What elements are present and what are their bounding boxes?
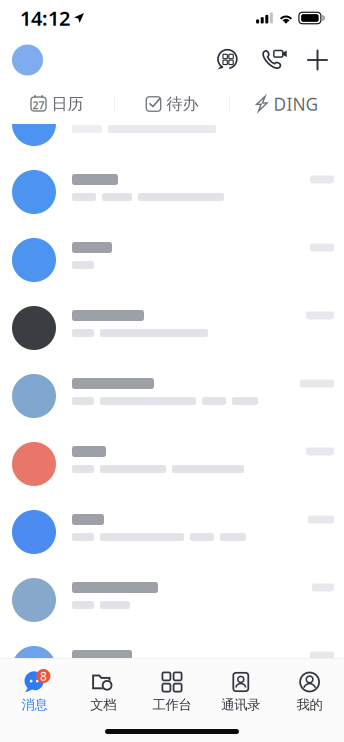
staticText: 27: [32, 98, 44, 112]
button[interactable]: [0, 226, 344, 294]
staticText: 工作台: [152, 696, 191, 713]
button[interactable]: [0, 498, 344, 566]
staticText: 日历: [51, 94, 83, 114]
button[interactable]: [0, 294, 344, 362]
staticText: 文档: [90, 696, 116, 713]
staticText: 消息: [21, 696, 47, 713]
button[interactable]: Add: [295, 39, 340, 81]
button[interactable]: 我的: [275, 658, 344, 713]
button[interactable]: Scan: [205, 39, 250, 81]
button[interactable]: 文档: [69, 658, 138, 713]
button[interactable]: 8: [0, 658, 69, 713]
button[interactable]: Profile: [0, 38, 51, 81]
button[interactable]: 27: [0, 85, 114, 123]
button[interactable]: [0, 566, 344, 634]
staticText: DING: [273, 92, 318, 115]
button[interactable]: [0, 362, 344, 430]
button[interactable]: 工作台: [138, 658, 206, 713]
button[interactable]: [0, 634, 344, 658]
button[interactable]: [0, 158, 344, 226]
staticText: 待办: [166, 94, 198, 114]
button[interactable]: 通讯录: [206, 658, 275, 713]
button[interactable]: Video call: [250, 39, 295, 81]
staticText: 通讯录: [221, 696, 260, 713]
button[interactable]: 待办: [115, 85, 229, 123]
button[interactable]: [0, 430, 344, 498]
button[interactable]: DING: [230, 85, 344, 123]
staticText: 我的: [297, 696, 323, 713]
staticText: 8: [40, 668, 47, 684]
button[interactable]: [0, 124, 344, 158]
staticText: 14:12: [20, 5, 70, 31]
